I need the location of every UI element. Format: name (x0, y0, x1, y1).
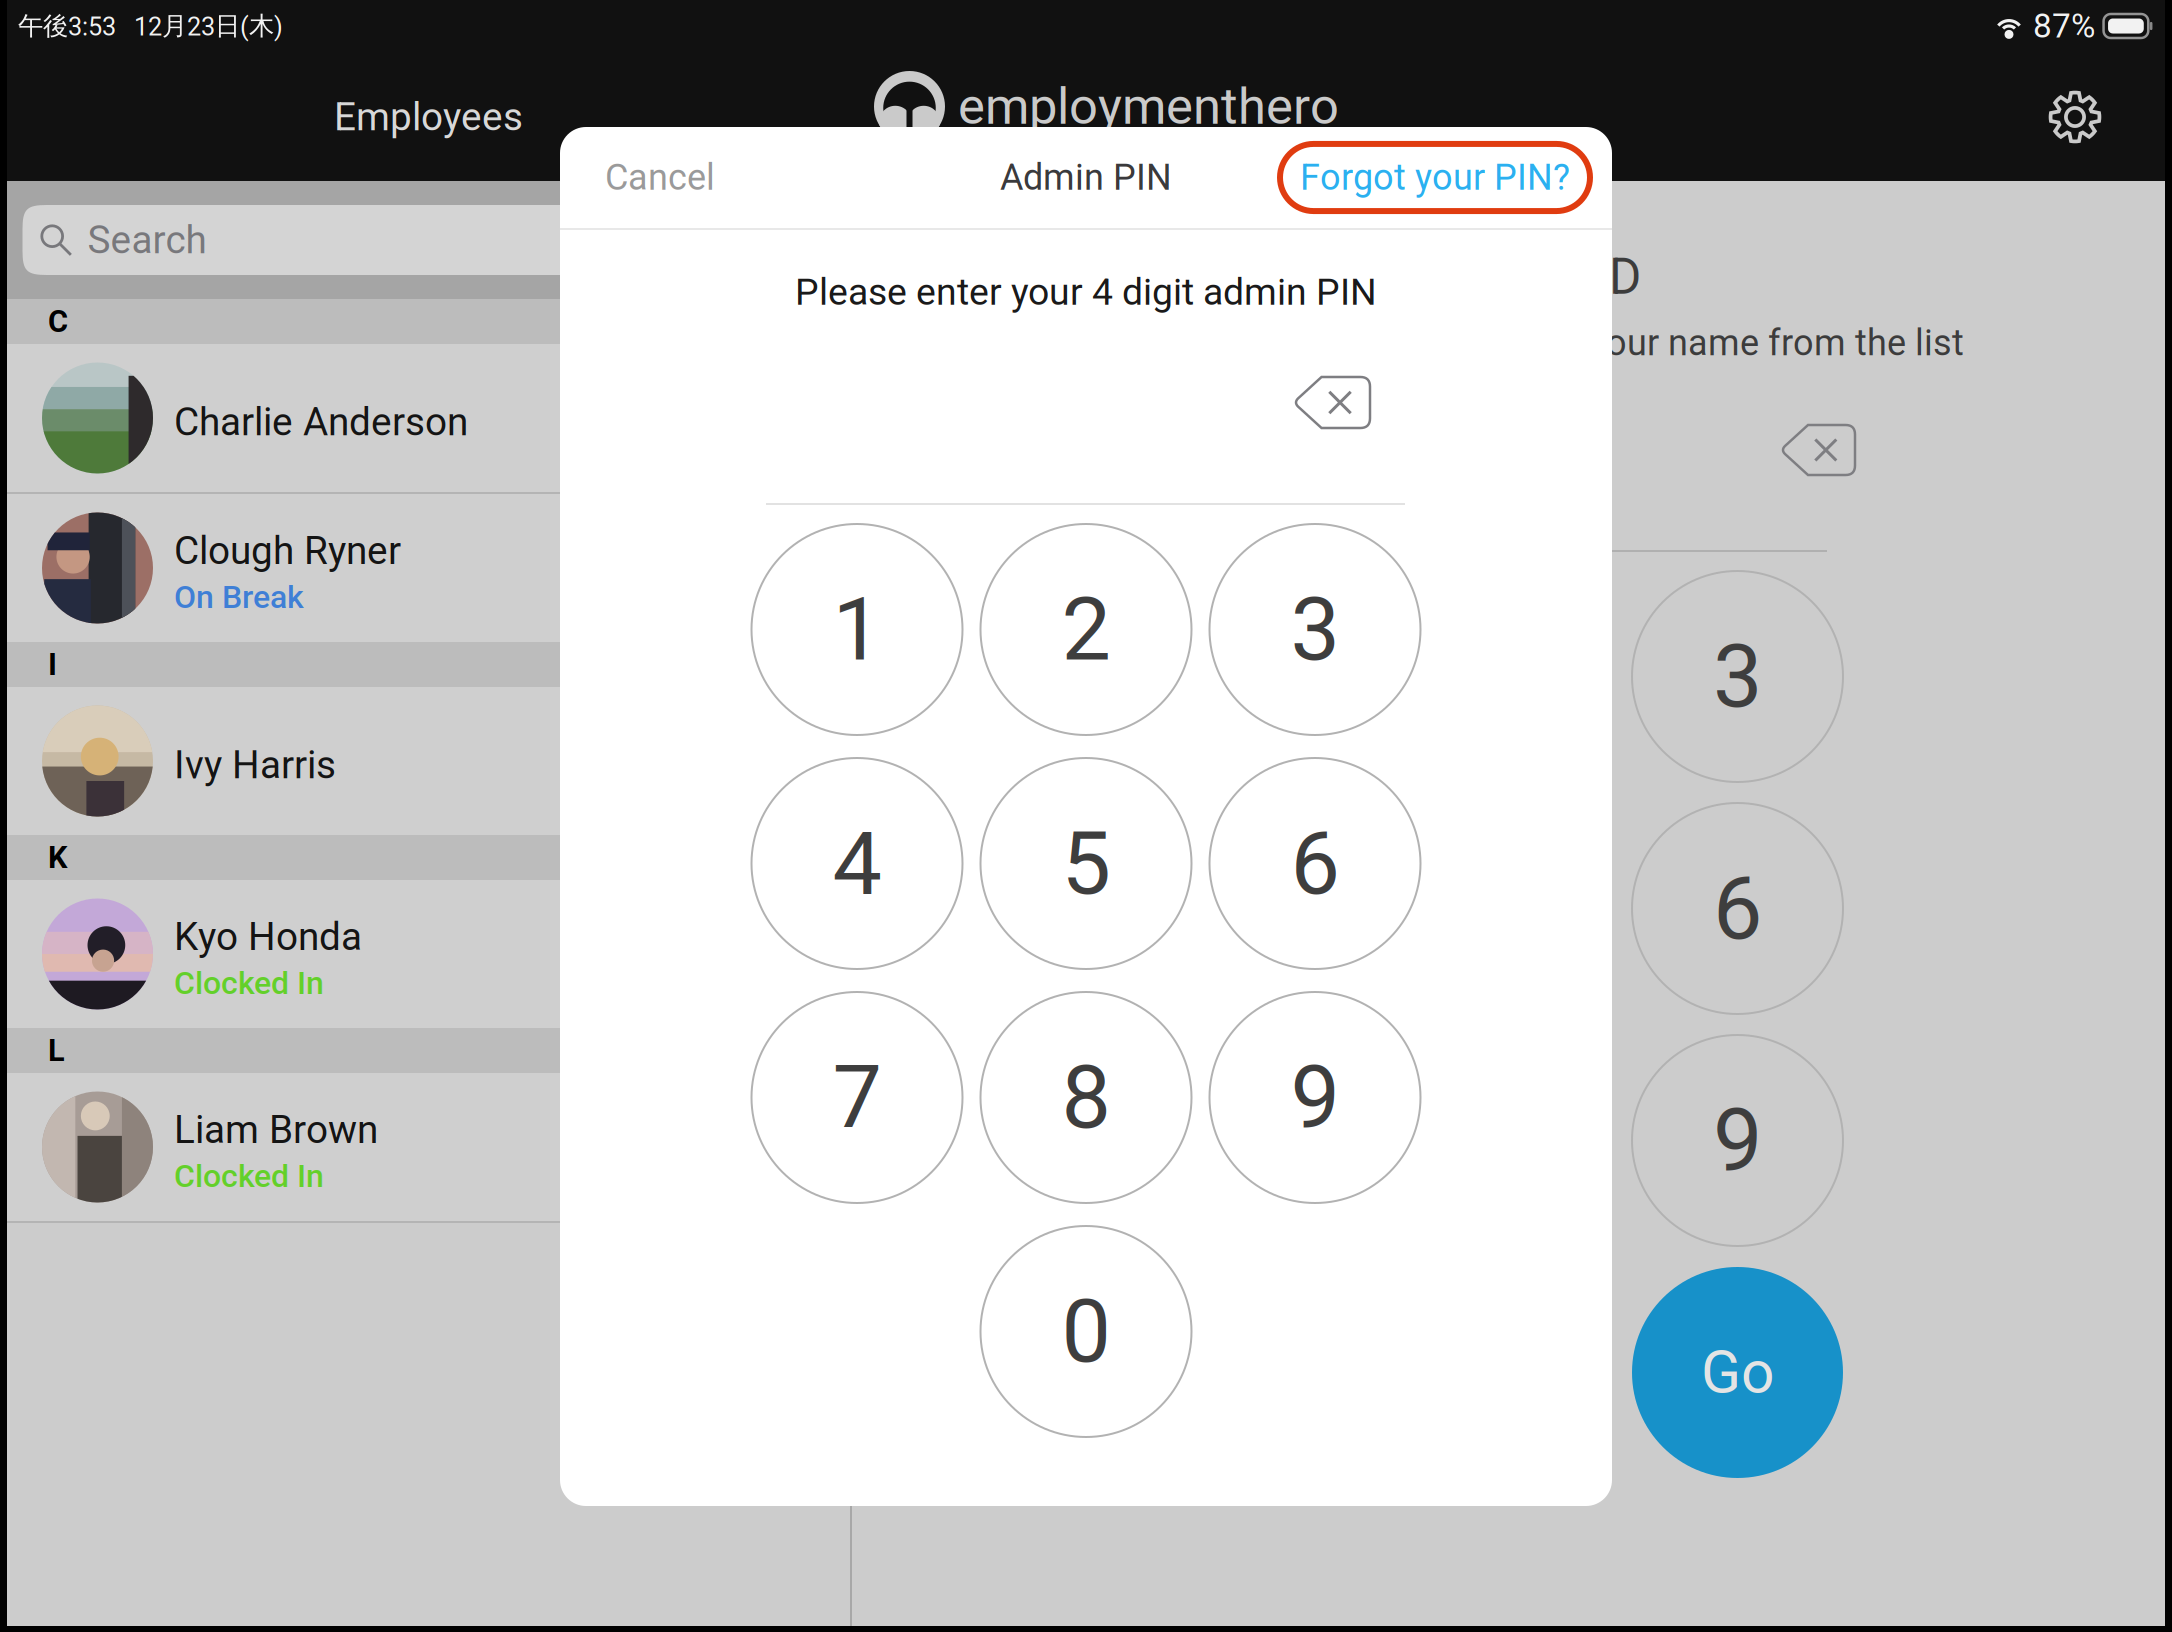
staticText: 9 (1290, 1047, 1339, 1148)
button[interactable]: 3 (1209, 524, 1420, 735)
button[interactable]: Forgot your PIN? (1280, 144, 1612, 211)
staticText: or select your name from the list (1441, 322, 1964, 363)
staticText: 9 (1713, 1090, 1762, 1191)
staticText: Forgot your PIN? (1300, 157, 1570, 198)
staticText: Please enter your 4 digit admin PIN (795, 271, 1377, 313)
staticText: Go (1701, 1339, 1774, 1406)
staticText: Clocked In (174, 965, 324, 1001)
staticText: 1 (1247, 626, 1296, 727)
button[interactable]: 2 (980, 524, 1191, 735)
staticText: 2 (1061, 579, 1110, 680)
button[interactable]: Ivy Harris (7, 687, 850, 835)
staticText: Kyo Honda (174, 915, 362, 959)
button[interactable]: Clough Ryner (7, 494, 850, 642)
staticText: 3 (1713, 626, 1762, 727)
staticText: 1 (832, 579, 881, 680)
staticText: Clough Ryner (174, 529, 401, 573)
button[interactable]: 7 (751, 992, 962, 1203)
staticText: 午後3:53 12月23日(木) (18, 10, 283, 41)
staticText: employmenthero (958, 78, 1339, 135)
button[interactable]: 9 (1632, 1035, 1843, 1246)
button[interactable]: 6 (1632, 803, 1843, 1014)
staticText: 7 (832, 1047, 881, 1148)
button[interactable]: 8 (1399, 1035, 1610, 1246)
button[interactable]: 1 (751, 524, 962, 735)
staticText: On Break (174, 579, 304, 615)
staticText: 0 (1061, 1281, 1110, 1382)
staticText: 5 (1061, 813, 1110, 914)
button[interactable]: 6 (1209, 758, 1420, 969)
staticText: Charlie Anderson (174, 400, 468, 444)
staticText: Clocked In (174, 1158, 324, 1194)
button[interactable]: 0 (980, 1226, 1191, 1437)
staticText: Admin PIN (1000, 157, 1172, 198)
staticText: K (48, 840, 67, 875)
button[interactable]: 2 (1399, 571, 1610, 782)
button[interactable]: Charlie Anderson (7, 344, 850, 492)
staticText: 6 (1713, 858, 1762, 959)
staticText: C (48, 304, 68, 339)
button[interactable]: 9 (1209, 992, 1420, 1203)
staticText: Liam Brown (174, 1108, 378, 1152)
staticText: 4 (832, 813, 881, 914)
staticText: 6 (1290, 813, 1339, 914)
button[interactable]: Cancel (560, 127, 715, 228)
staticText: 3 (1290, 579, 1339, 680)
button[interactable]: 8 (980, 992, 1191, 1203)
staticText: L (48, 1033, 65, 1068)
staticText: 8 (1061, 1047, 1110, 1148)
staticText: 4 (1247, 858, 1296, 959)
button[interactable]: Kyo Honda (7, 880, 850, 1028)
button[interactable]: 5 (980, 758, 1191, 969)
button[interactable]: 4 (751, 758, 962, 969)
button[interactable]: 7 (1166, 1035, 1377, 1246)
button[interactable]: 4 (1166, 803, 1377, 1014)
button[interactable]: 1 (1166, 571, 1377, 782)
staticText: Ivy Harris (174, 743, 336, 787)
button[interactable]: 5 (1399, 803, 1610, 1014)
button[interactable]: Settings (2020, 62, 2130, 172)
staticText: ENTER YOUR PIN ID (1207, 249, 1641, 305)
staticText: 7 (1247, 1090, 1296, 1191)
button[interactable]: 3 (1632, 571, 1843, 782)
staticText: Cancel (605, 157, 715, 198)
staticText: Search (87, 218, 206, 262)
staticText: I (48, 647, 57, 682)
staticText: 87% (2033, 7, 2095, 45)
button[interactable]: Liam Brown (7, 1073, 850, 1221)
staticText: Employees (334, 95, 523, 139)
button[interactable]: Go (1632, 1267, 1843, 1478)
